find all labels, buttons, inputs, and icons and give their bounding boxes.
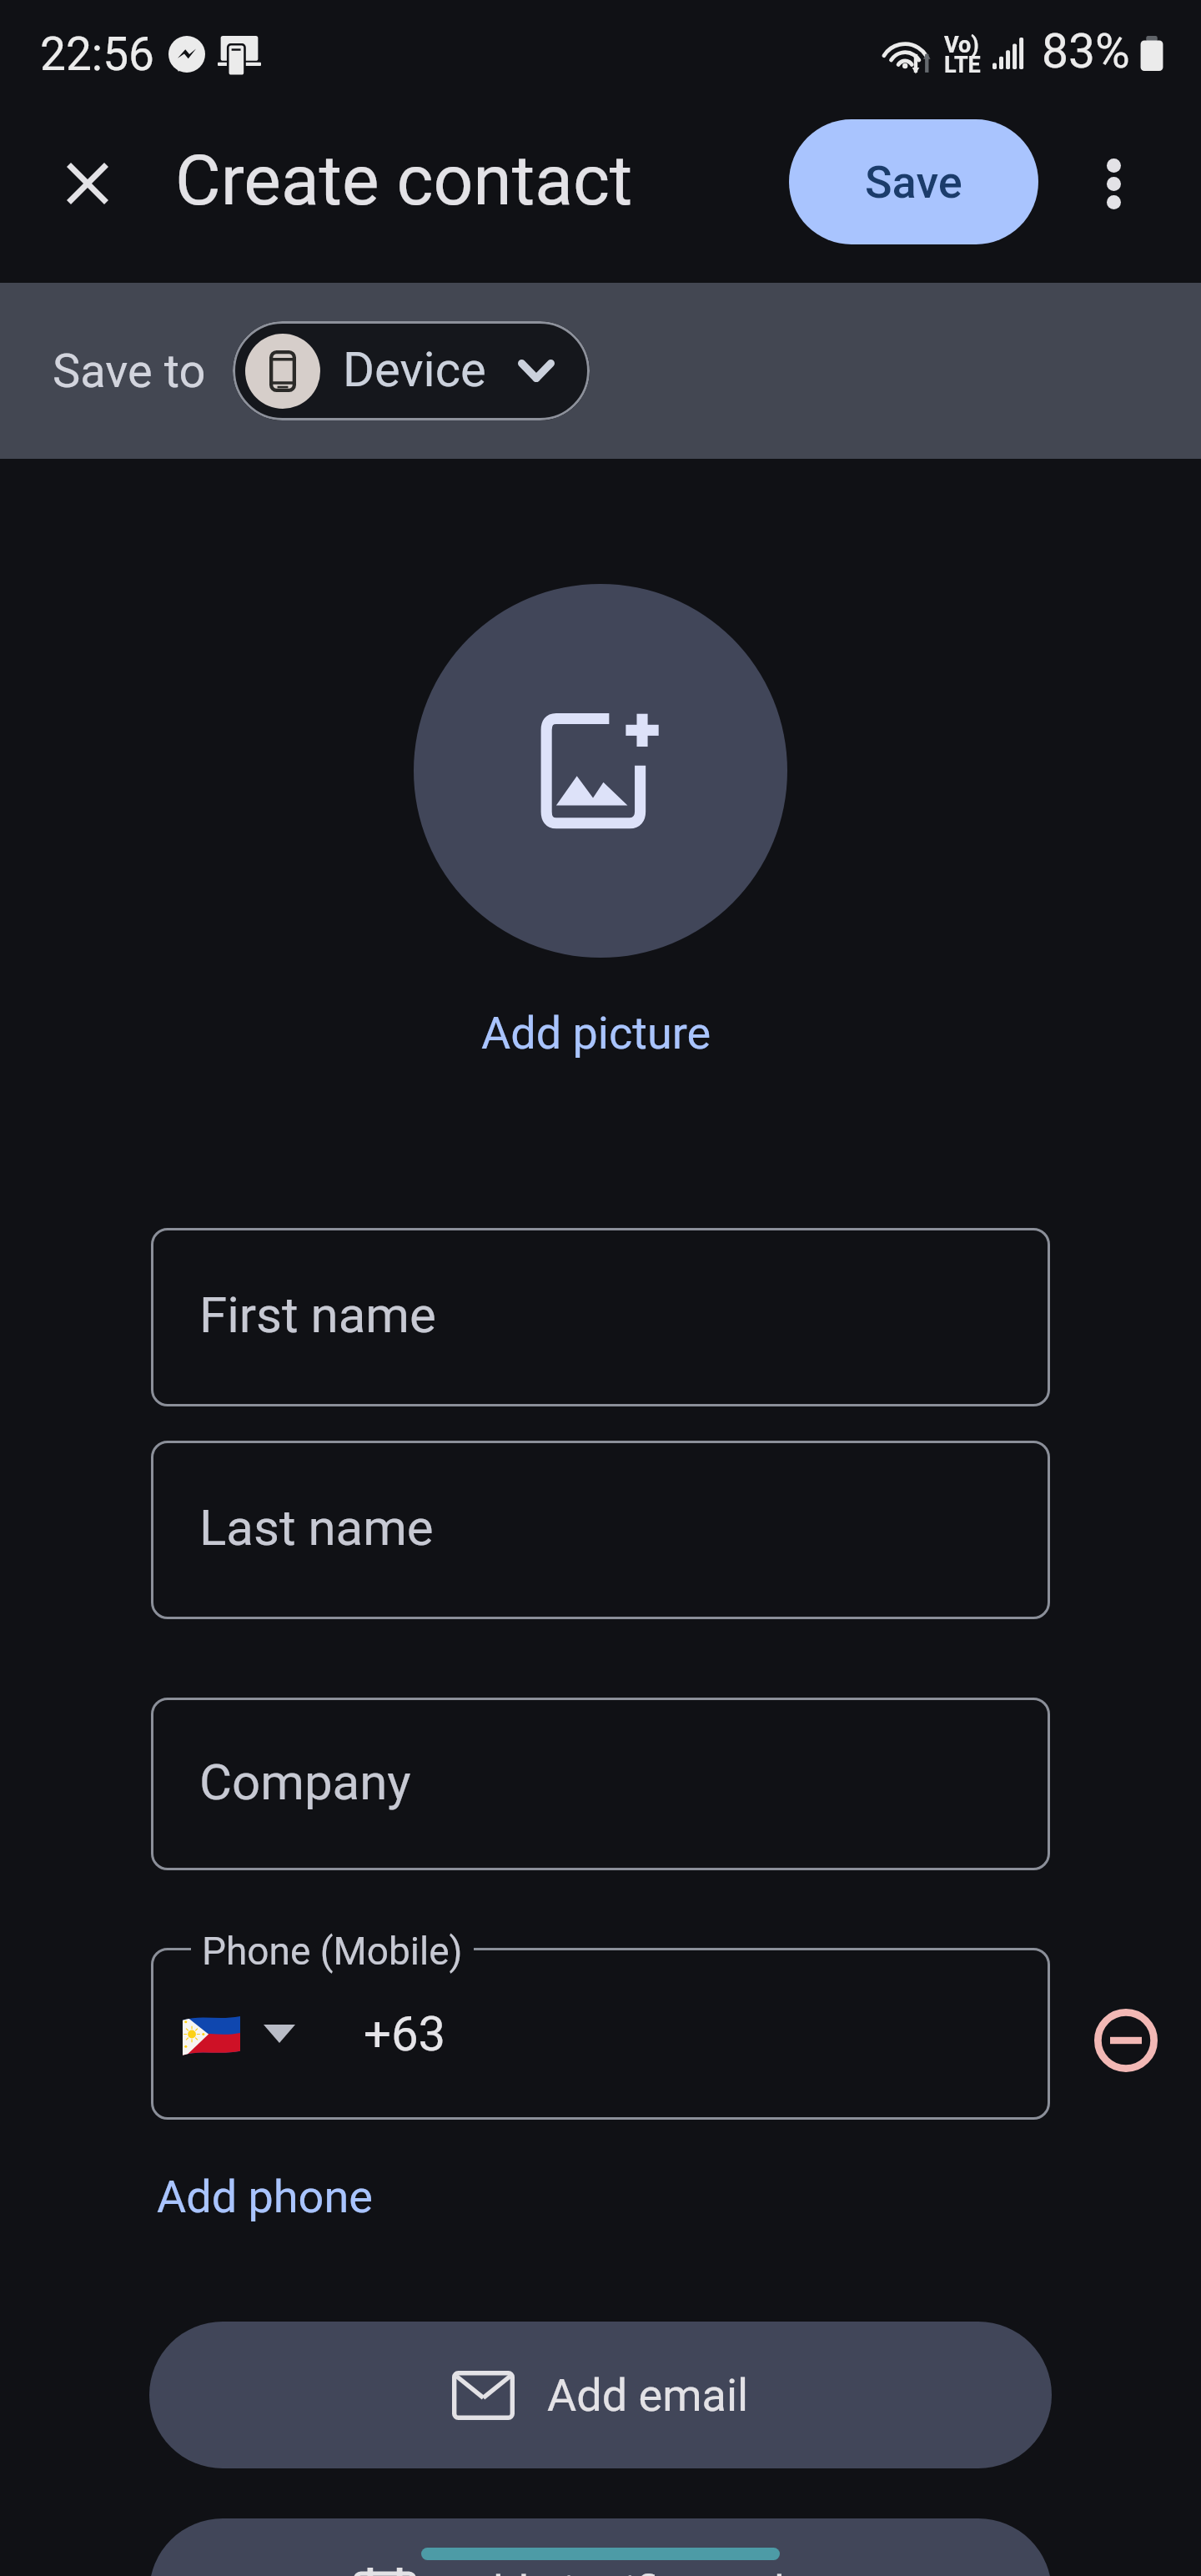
staticText: Company <box>199 1753 411 1811</box>
staticText: First name <box>199 1285 436 1344</box>
button[interactable]: Add phone <box>132 2146 398 2248</box>
staticText: Add phone <box>157 2171 373 2223</box>
staticText: Phone (Mobile) <box>202 1929 463 1974</box>
staticText: LTE <box>944 52 981 78</box>
button[interactable]: Add email <box>149 2322 1052 2468</box>
button[interactable]: Device <box>233 321 590 420</box>
button[interactable]: Company <box>151 1698 1050 1870</box>
staticText: Vo) <box>944 32 979 58</box>
button[interactable] <box>151 1948 1050 2120</box>
staticText: Add significant date <box>449 2566 848 2576</box>
staticText: Last name <box>199 1498 434 1557</box>
staticText: 22:56 <box>40 28 154 81</box>
staticText: Add picture <box>481 1007 711 1059</box>
staticText: 83% <box>1042 23 1130 79</box>
button[interactable]: Add picture <box>414 584 787 958</box>
staticText: Save <box>865 156 962 209</box>
button[interactable]: Add significant date <box>149 2518 1052 2576</box>
button[interactable]: Remove phone <box>1076 1990 1176 2090</box>
button[interactable]: Save <box>789 119 1038 244</box>
staticText: Create contact <box>175 139 633 221</box>
staticText: Add email <box>547 2369 749 2422</box>
staticText: Device <box>343 341 486 398</box>
staticText: +63 <box>364 2005 446 2062</box>
button[interactable]: More options <box>1065 135 1162 232</box>
staticText: Save to <box>53 344 206 399</box>
button[interactable]: Add picture <box>448 982 745 1084</box>
button[interactable]: Last name <box>151 1441 1050 1619</box>
button[interactable]: Close <box>39 135 136 232</box>
button[interactable]: First name <box>151 1228 1050 1406</box>
